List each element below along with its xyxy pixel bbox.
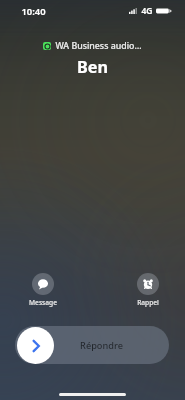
- button[interactable]: Message: [23, 273, 63, 307]
- staticText: 4G: [141, 5, 153, 17]
- staticText: Répondre: [80, 339, 123, 352]
- button[interactable]: Rappel: [128, 273, 168, 307]
- button[interactable]: Répondre: [15, 326, 169, 364]
- staticText: 10:40: [21, 5, 46, 18]
- staticText: Ben: [77, 56, 108, 78]
- staticText: Rappel: [137, 298, 159, 307]
- staticText: WA Business audio…: [55, 40, 142, 52]
- staticText: Message: [29, 298, 57, 307]
